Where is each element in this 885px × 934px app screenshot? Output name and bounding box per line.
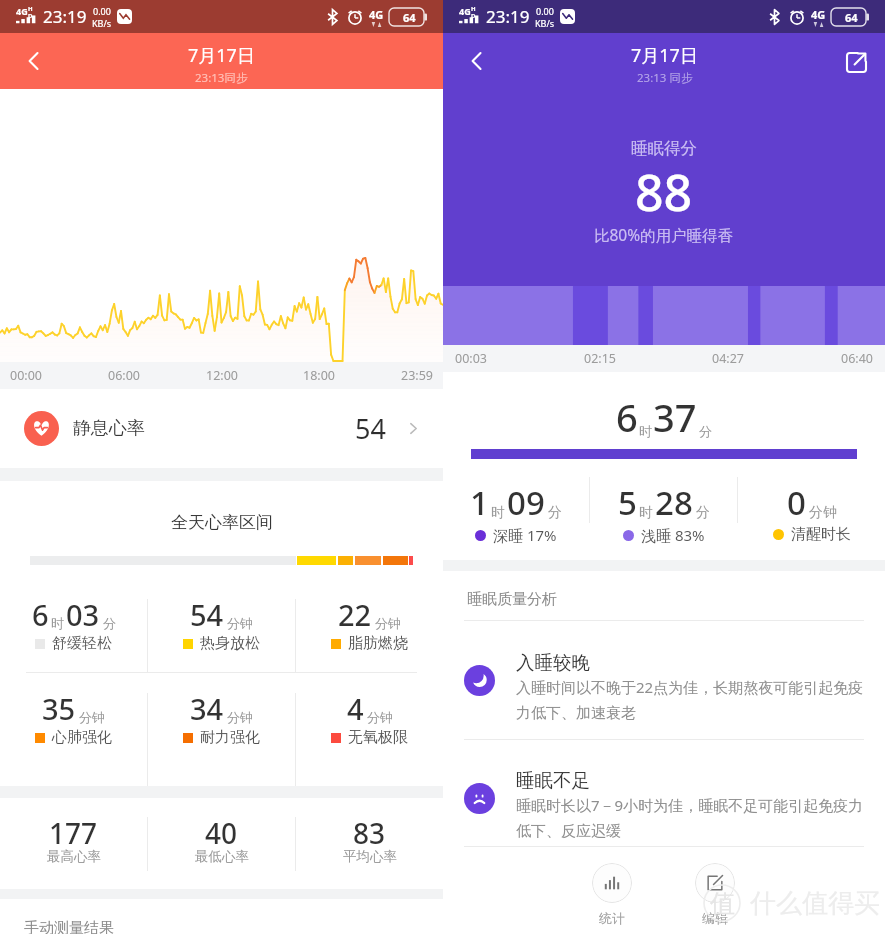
staticText: 0 <box>787 480 806 525</box>
button[interactable]: Back <box>457 41 497 81</box>
staticText: 4G <box>16 5 28 17</box>
button[interactable]: 睡眠不足 <box>443 740 885 846</box>
staticText: 耐力强化 <box>200 728 260 747</box>
button[interactable]: 统计 <box>562 847 662 934</box>
staticText: 06:00 <box>108 367 140 384</box>
staticText: HD <box>471 5 479 19</box>
staticText: 40 <box>205 814 238 852</box>
staticText: 09 <box>507 480 545 525</box>
staticText: 18:00 <box>303 367 335 384</box>
button[interactable]: Share <box>836 42 876 82</box>
staticText: 睡眠得分 <box>631 138 697 159</box>
staticText: 分钟 <box>375 615 401 631</box>
staticText: 平均心率 <box>343 848 397 865</box>
staticText: 23:13同步 <box>195 70 248 86</box>
staticText: 入睡时间以不晚于22点为佳，长期熬夜可能引起免疫 力低下、加速衰老 <box>516 677 864 722</box>
staticText: 什么值得买 <box>750 887 880 920</box>
staticText: 64 <box>403 10 416 25</box>
staticText: 分 <box>696 504 710 522</box>
staticText: 最高心率 <box>47 848 101 865</box>
staticText: 时 <box>639 504 653 522</box>
staticText: 全天心率区间 <box>171 512 273 533</box>
staticText: 4 <box>347 689 364 728</box>
staticText: 12:00 <box>206 367 238 384</box>
staticText: 分 <box>548 504 562 522</box>
staticText: 4G <box>369 7 384 22</box>
staticText: 值 <box>710 888 735 919</box>
button[interactable]: Back <box>14 41 54 81</box>
staticText: 静息心率 <box>73 417 145 440</box>
staticText: 02:15 <box>584 350 616 367</box>
staticText: 浅睡 83% <box>641 525 705 545</box>
staticText: 入睡较晚 <box>516 651 590 674</box>
staticText: 时 <box>51 615 64 631</box>
staticText: 23:19 <box>486 5 530 28</box>
staticText: 00:03 <box>455 350 487 367</box>
staticText: 深睡 17% <box>493 525 557 545</box>
staticText: 睡眠时长以7－9小时为佳，睡眠不足可能引起免疫力 低下、反应迟缓 <box>516 795 864 840</box>
button[interactable]: 编辑 <box>665 847 765 934</box>
staticText: 手动测量结果 <box>24 919 114 934</box>
staticText: 4G <box>459 5 471 17</box>
button[interactable]: 静息心率 <box>0 389 443 468</box>
staticText: 比80%的用户睡得香 <box>594 224 734 245</box>
staticText: 06:40 <box>841 350 873 367</box>
staticText: 5 <box>618 480 637 525</box>
staticText: 37 <box>653 391 697 443</box>
staticText: 编辑 <box>702 910 728 926</box>
staticText: 分 <box>699 423 712 439</box>
staticText: 88 <box>635 158 693 226</box>
staticText: 6 <box>616 391 638 443</box>
staticText: 00:00 <box>10 367 42 384</box>
staticText: HD <box>28 5 36 19</box>
button[interactable]: 入睡较晚 <box>443 621 885 739</box>
staticText: 分钟 <box>79 709 105 725</box>
staticText: 23:59 <box>401 367 433 384</box>
staticText: 脂肪燃烧 <box>348 634 408 653</box>
staticText: 54 <box>355 410 386 447</box>
staticText: 无氧极限 <box>348 728 408 747</box>
staticText: 23:13 同步 <box>637 70 693 86</box>
staticText: 22 <box>338 595 372 634</box>
staticText: 分钟 <box>809 504 837 522</box>
staticText: 睡眠质量分析 <box>467 590 557 609</box>
staticText: 23:19 <box>43 5 87 28</box>
staticText: 83 <box>353 814 386 852</box>
staticText: 睡眠不足 <box>516 769 590 792</box>
staticText: 心肺强化 <box>52 728 112 747</box>
staticText: 177 <box>49 814 98 852</box>
staticText: 35 <box>42 689 76 728</box>
staticText: 0.00 <box>93 5 111 17</box>
staticText: 03 <box>66 595 100 634</box>
staticText: 0.00 <box>536 5 554 17</box>
staticText: 64 <box>845 10 858 25</box>
staticText: 分钟 <box>227 615 253 631</box>
staticText: 分 <box>103 615 116 631</box>
staticText: 34 <box>190 689 224 728</box>
staticText: 分钟 <box>367 709 393 725</box>
staticText: 时 <box>639 423 652 439</box>
staticText: 最低心率 <box>195 848 249 865</box>
staticText: 7月17日 <box>188 43 255 68</box>
staticText: 28 <box>655 480 693 525</box>
staticText: 04:27 <box>712 350 744 367</box>
staticText: KB/s <box>535 17 555 29</box>
staticText: 分钟 <box>227 709 253 725</box>
staticText: 4G <box>811 7 826 22</box>
staticText: 6 <box>32 595 49 634</box>
staticText: 清醒时长 <box>791 525 851 544</box>
staticText: 热身放松 <box>200 634 260 653</box>
staticText: 7月17日 <box>631 43 698 68</box>
staticText: 统计 <box>599 910 625 926</box>
staticText: 时 <box>491 504 505 522</box>
staticText: 54 <box>190 595 224 634</box>
staticText: 舒缓轻松 <box>52 634 112 653</box>
staticText: 1 <box>470 480 489 525</box>
staticText: KB/s <box>92 17 112 29</box>
